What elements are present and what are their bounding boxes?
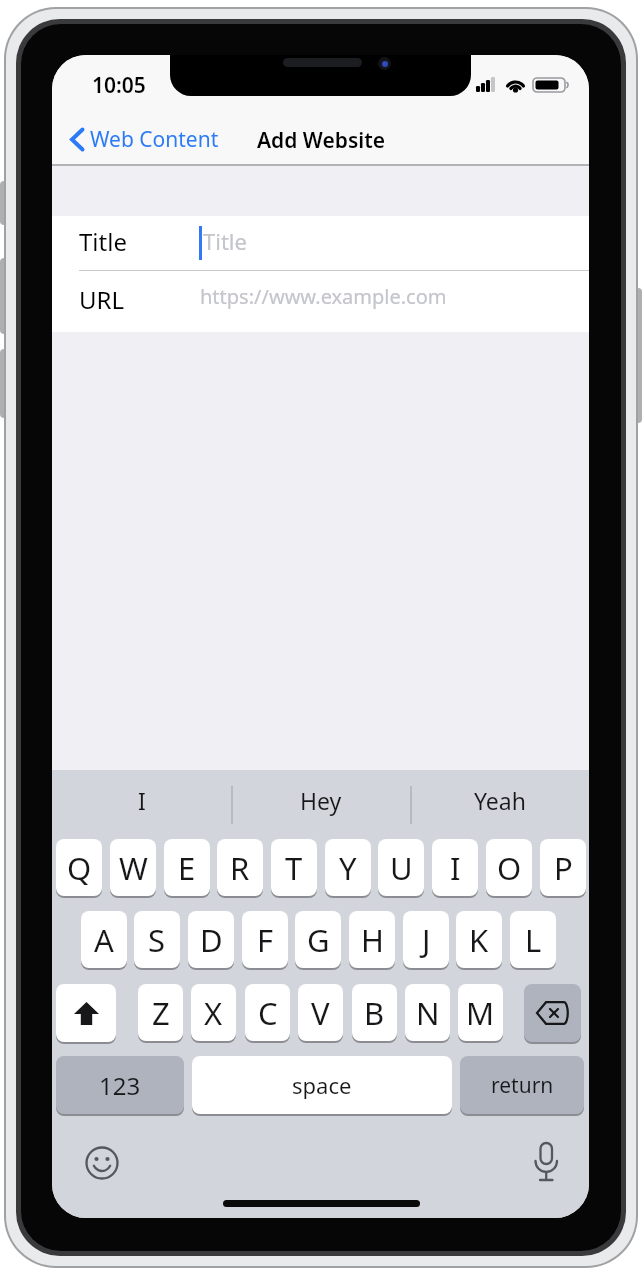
button[interactable]: S <box>134 911 180 968</box>
staticText: https://www.example.com <box>200 283 447 310</box>
staticText: space <box>292 1070 352 1100</box>
staticText: C <box>258 992 278 1034</box>
staticText: B <box>364 992 385 1034</box>
button[interactable]: space <box>192 1056 452 1114</box>
staticText: J <box>422 919 431 961</box>
button[interactable]: R <box>217 839 263 896</box>
staticText: X <box>204 992 223 1034</box>
staticText: Q <box>67 847 92 889</box>
staticText: K <box>469 919 489 961</box>
button[interactable]: P <box>540 839 586 896</box>
staticText: D <box>200 919 223 961</box>
button[interactable]: URL <box>52 270 589 332</box>
staticText: S <box>148 919 166 961</box>
button[interactable]: Yeah <box>410 765 589 835</box>
button[interactable]: V <box>298 984 343 1041</box>
button[interactable]: B <box>352 984 397 1041</box>
staticText: Yeah <box>474 785 526 816</box>
staticText: U <box>390 847 413 889</box>
staticText: Web Content <box>90 125 219 154</box>
staticText: A <box>94 919 114 961</box>
button[interactable] <box>56 984 116 1042</box>
staticText: Hey <box>300 785 342 816</box>
staticText: W <box>119 847 148 889</box>
button[interactable]: Y <box>325 839 371 896</box>
button[interactable]: Title <box>52 216 589 270</box>
button[interactable]: F <box>242 911 288 968</box>
staticText: T <box>285 847 303 889</box>
staticText: N <box>416 992 440 1034</box>
button[interactable]: K <box>456 911 502 968</box>
staticText: V <box>311 992 330 1034</box>
staticText: L <box>525 919 542 961</box>
button[interactable]: M <box>458 984 503 1041</box>
staticText: M <box>466 992 495 1034</box>
staticText: URL <box>79 283 125 316</box>
staticText: P <box>554 847 573 889</box>
button[interactable] <box>524 984 581 1042</box>
button[interactable]: Q <box>56 839 102 896</box>
staticText: Y <box>339 847 357 889</box>
button[interactable]: return <box>460 1056 584 1114</box>
button[interactable]: D <box>188 911 234 968</box>
button[interactable]: 123 <box>56 1056 184 1114</box>
button[interactable]: I <box>52 765 231 835</box>
staticText: Z <box>152 992 170 1034</box>
button[interactable]: Web Content <box>62 120 277 158</box>
button[interactable]: A <box>81 911 127 968</box>
staticText: return <box>491 1071 554 1100</box>
button[interactable]: G <box>295 911 341 968</box>
button[interactable]: J <box>403 911 449 968</box>
button[interactable]: E <box>164 839 210 896</box>
button[interactable]: Z <box>138 984 183 1041</box>
button[interactable]: C <box>245 984 290 1041</box>
button[interactable]: I <box>432 839 478 896</box>
button[interactable]: O <box>486 839 532 896</box>
staticText: I <box>450 847 461 889</box>
staticText: H <box>361 919 384 961</box>
staticText: R <box>230 847 250 889</box>
button[interactable]: N <box>405 984 450 1041</box>
button[interactable]: H <box>349 911 395 968</box>
staticText: E <box>178 847 196 889</box>
button[interactable]: W <box>110 839 156 896</box>
staticText: O <box>497 847 522 889</box>
button[interactable]: U <box>378 839 424 896</box>
staticText: 123 <box>99 1069 141 1102</box>
button[interactable]: Hey <box>231 765 410 835</box>
button[interactable]: L <box>510 911 556 968</box>
staticText: Title <box>203 226 247 256</box>
staticText: F <box>257 919 274 961</box>
staticText: Add Website <box>257 126 385 155</box>
staticText: Title <box>79 225 127 258</box>
staticText: I <box>138 785 146 816</box>
staticText: 10:05 <box>92 71 146 95</box>
staticText: G <box>307 919 330 961</box>
button[interactable]: T <box>271 839 317 896</box>
button[interactable]: X <box>191 984 236 1041</box>
